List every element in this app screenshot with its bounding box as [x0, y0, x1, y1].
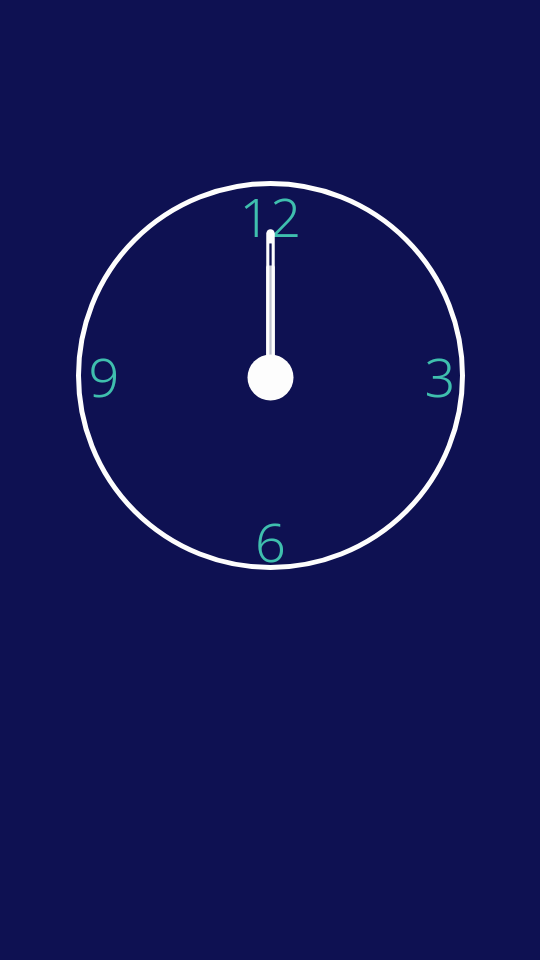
button[interactable]: Analog clock showing twelve o'clock — [0, 0, 540, 960]
